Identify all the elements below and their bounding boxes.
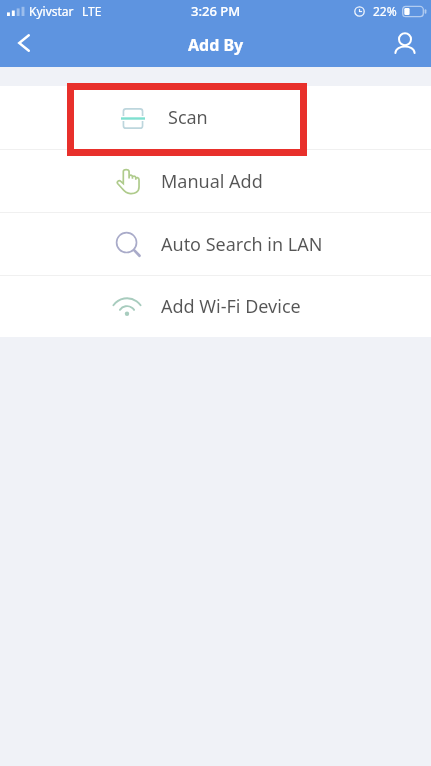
staticText: Scan [168,105,208,130]
button[interactable]: Back [3,22,44,63]
staticText: Kyivstar [29,3,74,19]
staticText: LTE [82,3,102,19]
button[interactable]: Add Wi-Fi Device [0,276,431,337]
staticText: 3:26 PM [191,2,241,20]
button[interactable]: Manual Add [0,150,431,212]
staticText: 22% [373,3,397,19]
button[interactable]: Auto Search in LAN [0,213,431,275]
button[interactable]: Account [384,22,425,63]
staticText: Add By [188,34,244,56]
staticText: Add Wi-Fi Device [161,294,301,319]
button[interactable]: Scan [0,86,431,149]
staticText: Auto Search in LAN [161,232,323,257]
staticText: Manual Add [161,169,263,194]
